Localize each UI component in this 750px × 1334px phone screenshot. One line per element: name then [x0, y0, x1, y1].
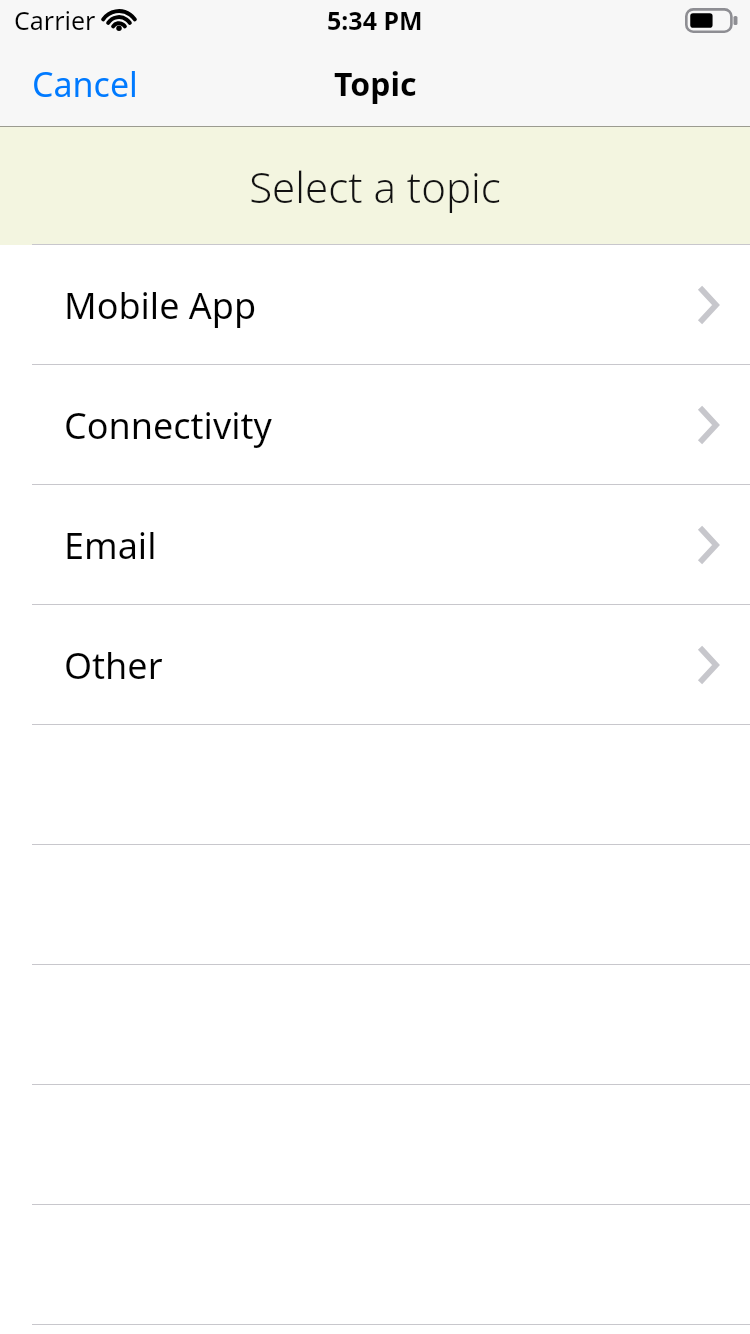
staticText: Mobile App — [64, 281, 257, 330]
staticText: Select a topic — [249, 158, 501, 215]
other: Open — [698, 646, 720, 684]
staticText: Cancel — [32, 61, 138, 107]
staticText: 5:34 PM — [327, 3, 423, 37]
staticText: Carrier — [14, 3, 96, 37]
other: Open — [698, 406, 720, 444]
staticText: Connectivity — [64, 401, 272, 450]
button[interactable]: Connectivity — [0, 365, 750, 485]
other: Open — [698, 526, 720, 564]
button[interactable]: Mobile App — [0, 245, 750, 365]
button[interactable]: Cancel — [0, 47, 170, 121]
staticText: Topic — [334, 62, 417, 106]
staticText: Email — [64, 521, 157, 570]
button[interactable]: Email — [0, 485, 750, 605]
staticText: Other — [64, 641, 163, 690]
other: Open — [698, 286, 720, 324]
button[interactable]: Other — [0, 605, 750, 725]
